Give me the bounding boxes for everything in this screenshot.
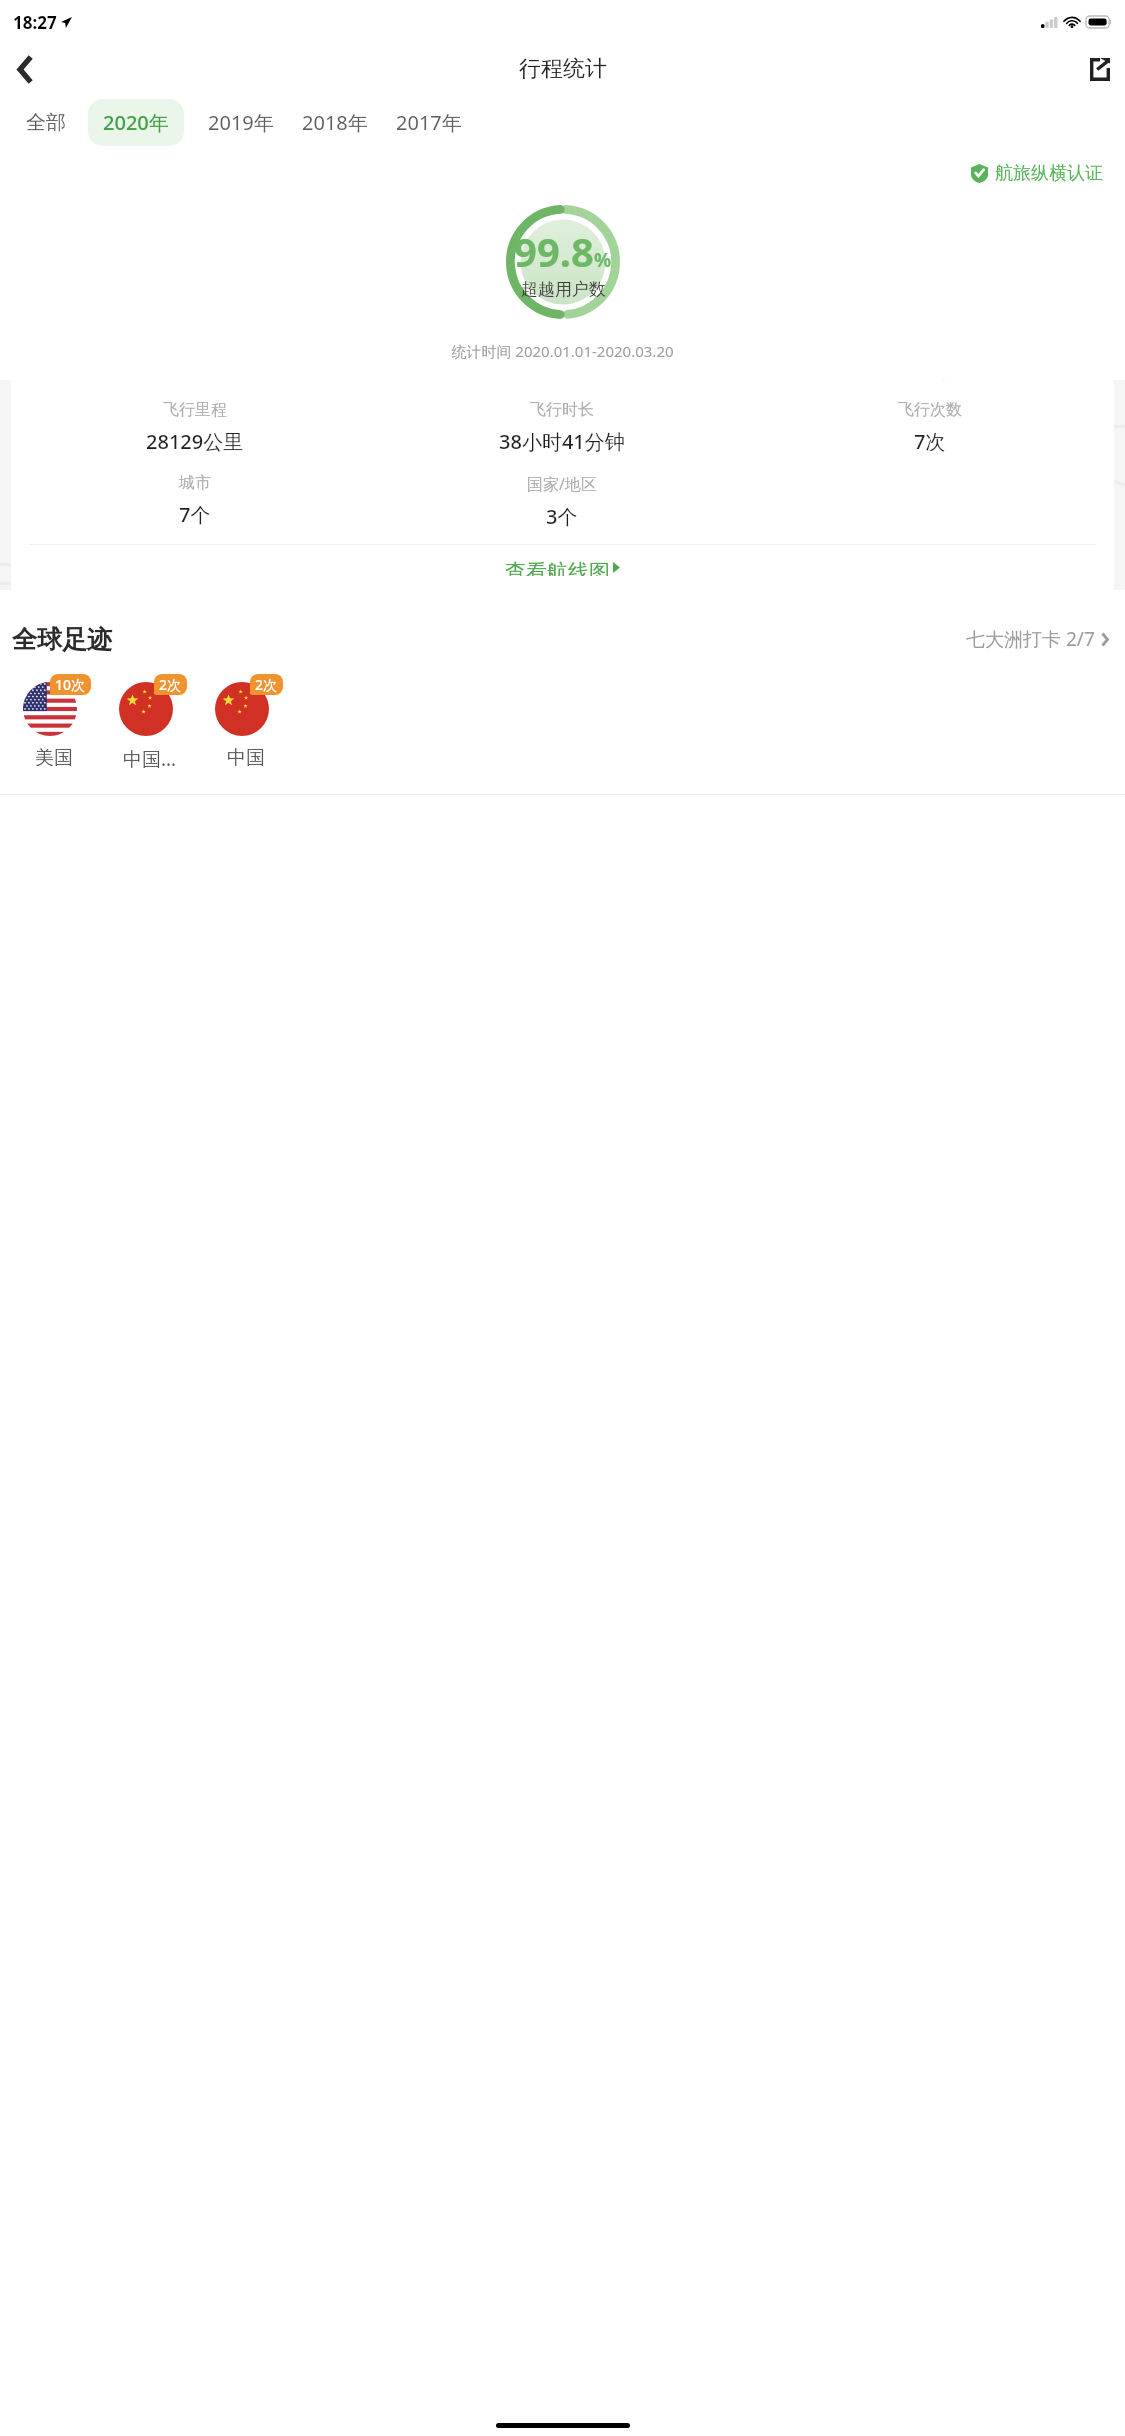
staticText: 中国 [227,746,265,770]
button[interactable]: 2次 [102,674,198,772]
staticText: 美国 [35,746,73,770]
staticText: 城市 [179,473,211,493]
button[interactable]: 2017年 [392,99,466,146]
staticText: 38小时41分钟 [499,428,625,455]
staticText: 2次 [255,675,278,694]
staticText: 2次 [159,675,182,694]
button[interactable]: 2020年 [88,99,184,146]
staticText: % [594,247,612,273]
button[interactable]: 七大洲打卡 2/7 [962,622,1113,656]
button[interactable]: 10次 [6,674,102,770]
staticText: 99.8 [514,224,594,278]
staticText: 18:27 [13,11,57,34]
staticText: 七大洲打卡 2/7 [966,626,1095,652]
staticText: 3个 [546,503,578,530]
staticText: 行程统计 [519,55,607,83]
button[interactable]: 航旅纵横认证 [967,158,1107,189]
staticText: 2017年 [396,109,462,136]
staticText: 中国… [123,746,177,772]
staticText: 全球足迹 [12,624,112,655]
button[interactable]: 全部 [22,100,70,145]
staticText: 统计时间 2020.01.01-2020.03.20 [0,341,1125,361]
staticText: 航旅纵横认证 [995,162,1103,185]
button[interactable]: 2019年 [204,99,278,146]
staticText: 2019年 [208,109,274,136]
staticText: 全部 [26,110,66,135]
staticText: 飞行里程 [163,400,227,420]
staticText: 国家/地区 [527,473,597,495]
button[interactable]: 2018年 [298,99,372,146]
button[interactable]: Share [1075,44,1125,94]
staticText: 飞行时长 [530,400,594,420]
button[interactable]: Back [0,44,50,94]
staticText: 2018年 [302,109,368,136]
staticText: 10次 [55,675,86,694]
staticText: 7个 [179,501,211,528]
button[interactable]: 查看航线图 [11,545,1114,590]
staticText: 7次 [914,428,946,455]
staticText: 飞行次数 [898,400,962,420]
staticText: 28129公里 [146,428,244,455]
staticText: 2020年 [103,109,169,136]
staticText: 查看航线图 [505,559,610,576]
staticText: 超越用户数 [521,279,606,300]
button[interactable]: 2次 [198,674,294,770]
